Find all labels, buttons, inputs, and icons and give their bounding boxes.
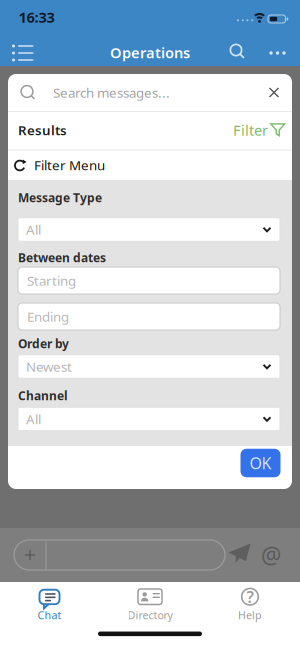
- button[interactable]: All: [18, 218, 280, 241]
- button[interactable]: Newest: [18, 355, 280, 378]
- staticText: Chat: [37, 608, 61, 622]
- button[interactable]: All: [18, 407, 280, 431]
- button[interactable]: Chat: [14, 582, 84, 620]
- staticText: Filter Menu: [34, 156, 105, 174]
- button[interactable]: Starting: [18, 267, 280, 294]
- staticText: Operations: [110, 43, 190, 62]
- staticText: 16:33: [18, 7, 54, 27]
- button[interactable]: Add attachment: [14, 540, 46, 570]
- button[interactable]: OK: [240, 449, 280, 477]
- staticText: Directory: [127, 608, 172, 622]
- staticText: Help: [238, 608, 262, 622]
- button[interactable]: Menu: [6, 40, 40, 66]
- staticText: ?: [246, 586, 253, 607]
- button[interactable]: Filter: [230, 117, 288, 143]
- button[interactable]: Mention: [258, 542, 284, 568]
- staticText: Ending: [27, 308, 69, 325]
- staticText: Message Type: [18, 189, 102, 205]
- button[interactable]: Filter Menu: [8, 150, 292, 180]
- button[interactable]: Send: [227, 541, 253, 567]
- staticText: Starting: [27, 272, 76, 289]
- button[interactable]: Directory: [112, 582, 187, 620]
- staticText: @: [261, 540, 281, 570]
- button[interactable]: More options: [267, 43, 288, 63]
- staticText: Filter: [233, 120, 268, 140]
- staticText: All: [26, 221, 41, 238]
- button[interactable]: Message: [46, 540, 225, 570]
- staticText: Order by: [18, 335, 69, 351]
- button[interactable]: Close search: [260, 78, 288, 106]
- staticText: Results: [18, 121, 67, 139]
- staticText: Newest: [26, 358, 72, 375]
- staticText: OK: [249, 452, 271, 474]
- staticText: Between dates: [18, 249, 106, 265]
- button[interactable]: Search: [223, 38, 251, 66]
- staticText: Channel: [18, 387, 68, 403]
- button[interactable]: Ending: [18, 303, 280, 330]
- staticText: Search messages...: [53, 84, 170, 101]
- button[interactable]: ?: [212, 582, 287, 620]
- staticText: All: [26, 410, 41, 428]
